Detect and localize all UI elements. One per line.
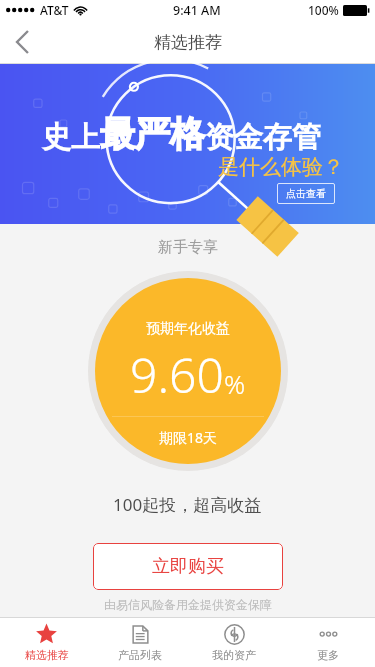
staticText: 我的资产 (212, 648, 256, 662)
button[interactable]: 我的资产 (187, 618, 281, 667)
staticText: AT&T (40, 2, 69, 18)
button[interactable]: 预期年化收益 (95, 278, 281, 464)
button[interactable]: Back (0, 20, 44, 64)
staticText: 9.60 (130, 342, 224, 407)
staticText: 9:41 AM (173, 2, 221, 19)
staticText: 点击查看 (286, 187, 326, 200)
staticText: 由易信风险备用金提供资金保障 (104, 597, 272, 612)
staticText: 资金存管 (205, 119, 321, 156)
staticText: 期限18天 (159, 428, 218, 447)
button[interactable]: 精选推荐 (0, 618, 93, 667)
button[interactable]: 点击查看 (277, 183, 335, 204)
staticText: 预期年化收益 (146, 320, 230, 338)
button[interactable]: 更多 (281, 618, 375, 667)
staticText: 史上 (42, 119, 100, 156)
staticText: 立即购买 (152, 555, 224, 578)
staticText: 100起投，超高收益 (113, 493, 262, 516)
staticText: 最严格 (100, 112, 205, 156)
staticText: 精选推荐 (154, 32, 222, 53)
button[interactable]: 史上 (0, 64, 375, 224)
staticText: 是什么体验？ (218, 154, 344, 180)
button[interactable]: 产品列表 (93, 618, 187, 667)
staticText: 产品列表 (118, 648, 162, 662)
staticText: % (224, 366, 246, 401)
staticText: 新手专享 (158, 238, 218, 257)
staticText: 精选推荐 (25, 648, 69, 662)
staticText: 100% (308, 2, 339, 18)
button[interactable]: 立即购买 (93, 543, 283, 590)
staticText: 更多 (317, 648, 339, 662)
